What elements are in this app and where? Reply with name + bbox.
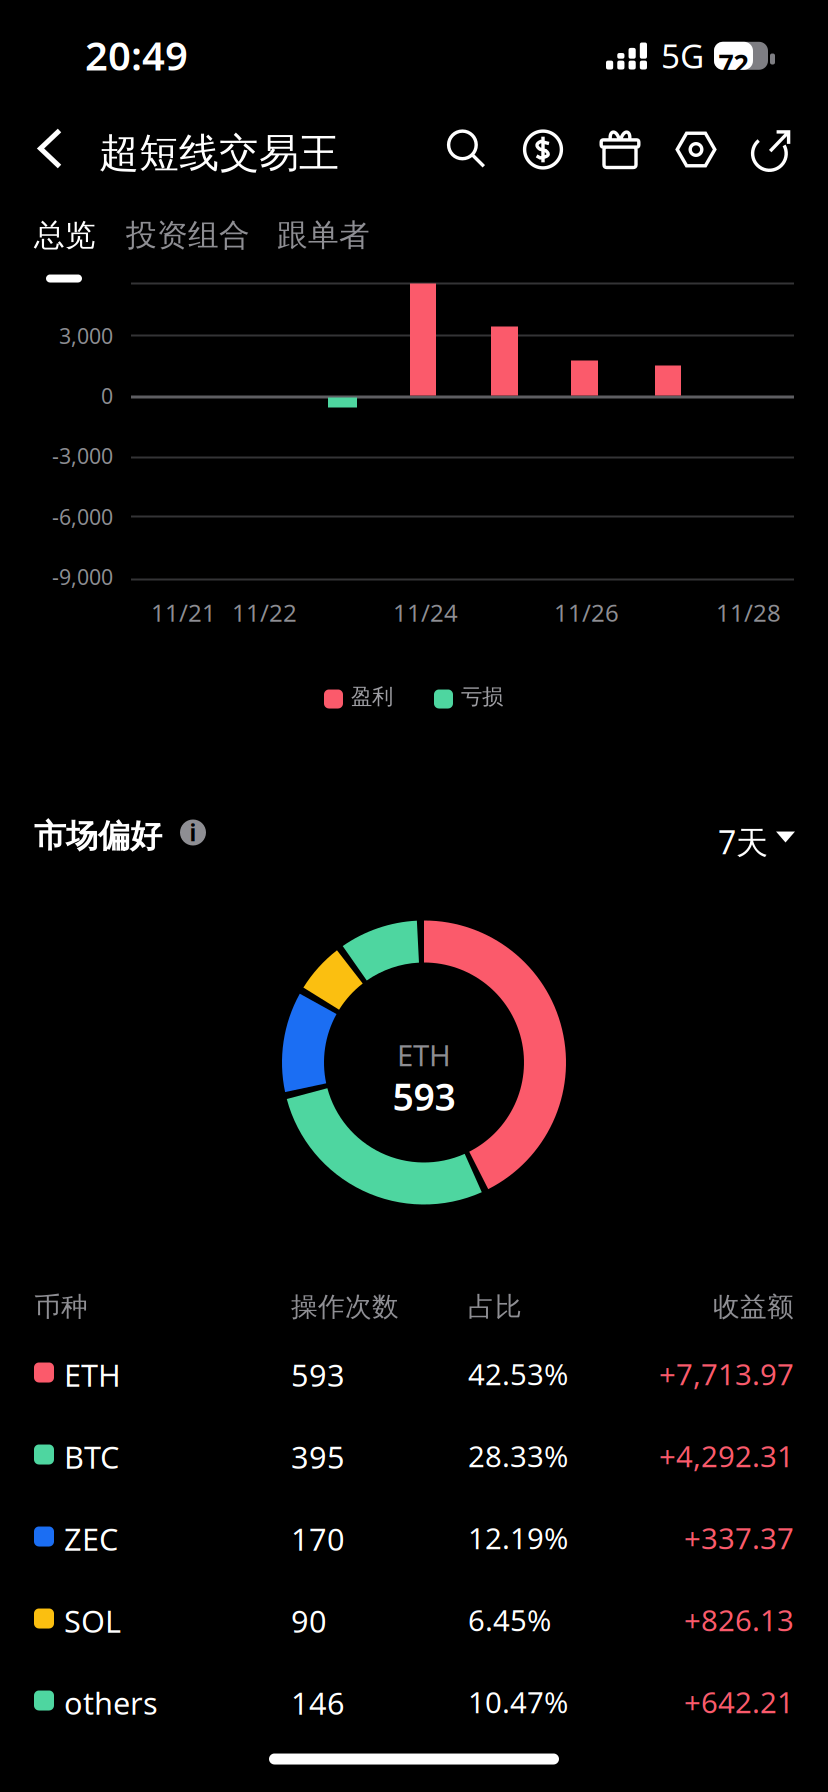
staticText: 146: [291, 1682, 345, 1723]
button[interactable]: Info: [173, 812, 213, 852]
button[interactable]: Earnings: [511, 117, 575, 181]
staticText: 11/28: [716, 596, 781, 628]
staticText: 395: [291, 1436, 345, 1477]
button[interactable]: ZEC: [0, 1494, 828, 1576]
staticText: -9,000: [52, 562, 113, 591]
button[interactable]: ETH: [0, 1330, 828, 1412]
staticText: 3,000: [59, 321, 113, 350]
staticText: 11/22: [232, 596, 297, 628]
button[interactable]: BTC: [0, 1412, 828, 1494]
button[interactable]: 投资组合: [116, 208, 260, 262]
staticText: 超短线交易王: [99, 128, 339, 178]
staticText: 收益额: [713, 1290, 794, 1323]
staticText: 593: [291, 1354, 345, 1395]
staticText: ETH: [64, 1354, 121, 1395]
button[interactable]: others: [0, 1658, 828, 1740]
staticText: SOL: [64, 1600, 121, 1641]
staticText: 90: [291, 1600, 327, 1641]
staticText: 占比: [468, 1290, 522, 1323]
staticText: +642.21: [684, 1682, 794, 1721]
staticText: 市场偏好: [34, 816, 162, 856]
button[interactable]: Share: [739, 117, 803, 181]
button[interactable]: Explore: [664, 117, 728, 181]
staticText: +7,713.97: [659, 1354, 794, 1393]
staticText: 亏损: [461, 683, 503, 710]
staticText: 6.45%: [468, 1600, 551, 1639]
staticText: 11/24: [393, 596, 458, 628]
staticText: 11/26: [554, 596, 619, 628]
button[interactable]: Back: [19, 117, 81, 179]
staticText: 投资组合: [126, 216, 250, 254]
staticText: +337.37: [684, 1518, 794, 1557]
staticText: 11/21: [151, 596, 216, 628]
staticText: 72: [718, 46, 748, 81]
button[interactable]: SOL: [0, 1576, 828, 1658]
staticText: 12.19%: [468, 1518, 568, 1557]
staticText: -3,000: [52, 441, 113, 470]
staticText: +4,292.31: [659, 1436, 794, 1475]
staticText: +826.13: [684, 1600, 794, 1639]
staticText: 盈利: [351, 683, 393, 710]
staticText: BTC: [64, 1436, 119, 1477]
staticText: others: [64, 1682, 158, 1723]
staticText: ETH: [397, 1035, 451, 1074]
staticText: 币种: [34, 1290, 88, 1323]
button[interactable]: 跟单者: [267, 208, 380, 262]
staticText: 0: [101, 381, 113, 410]
staticText: ZEC: [64, 1518, 118, 1559]
button[interactable]: Search: [435, 117, 499, 181]
staticText: 5G: [661, 33, 704, 78]
staticText: 10.47%: [468, 1682, 568, 1721]
staticText: 28.33%: [468, 1436, 568, 1475]
staticText: -6,000: [52, 502, 113, 531]
staticText: 593: [392, 1071, 455, 1121]
staticText: 7天: [718, 820, 768, 863]
staticText: 总览: [34, 216, 96, 254]
button[interactable]: 7天: [718, 808, 796, 862]
staticText: 20:49: [85, 28, 188, 82]
button[interactable]: Rewards: [588, 117, 652, 181]
staticText: 170: [291, 1518, 345, 1559]
staticText: i: [189, 817, 196, 847]
staticText: 跟单者: [277, 216, 370, 254]
staticText: 操作次数: [291, 1290, 399, 1323]
staticText: 42.53%: [468, 1354, 568, 1393]
button[interactable]: 总览: [24, 208, 106, 262]
